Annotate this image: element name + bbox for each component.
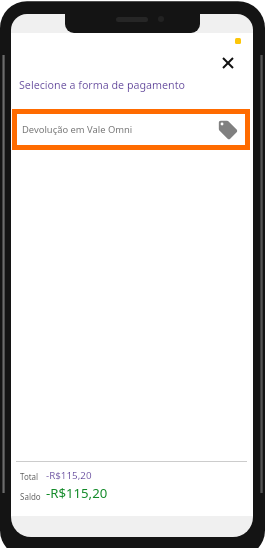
staticText: Saldo: [20, 491, 41, 502]
staticText: Total: [20, 471, 39, 482]
staticText: Selecione a forma de pagamento: [19, 78, 186, 93]
staticText: Devolução em Vale Omni: [22, 123, 133, 136]
button[interactable]: Devolução em Vale Omni: [12, 109, 250, 150]
button[interactable]: Fechar: [218, 53, 238, 73]
staticText: -R$115,20: [46, 484, 108, 502]
staticText: -R$115,20: [46, 469, 92, 482]
